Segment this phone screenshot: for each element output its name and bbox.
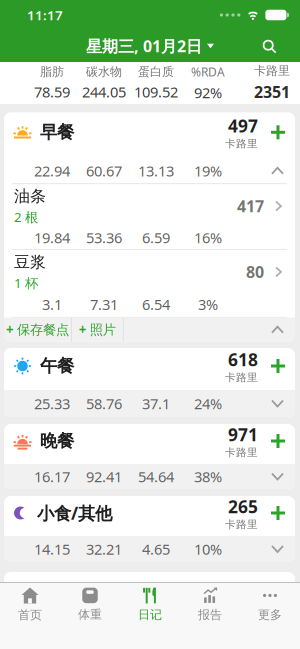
button[interactable]: 添加小食/其他食物 [267,502,289,524]
staticText: 19% [194,161,222,181]
staticText: 19.84 [34,228,70,247]
staticText: 14.15 [34,539,70,559]
staticText: 卡路里 [254,63,290,78]
button[interactable]: 收起 [264,164,295,178]
button[interactable]: + [72,318,123,342]
button[interactable]: 展开 [264,542,295,556]
button[interactable]: + [4,318,71,342]
staticText: 豆浆 [14,252,46,272]
staticText: 24% [194,394,222,413]
staticText: 53.36 [86,228,122,247]
staticText: 80 [246,261,264,282]
staticText: + [79,321,87,338]
staticText: 265 [228,495,258,518]
staticText: 60.67 [86,161,122,181]
staticText: 油条 [14,186,46,206]
button[interactable]: 豆浆 [4,250,295,292]
staticText: 109.52 [134,82,178,102]
staticText: 2 根 [14,208,38,226]
staticText: 6.59 [142,228,170,247]
staticText: 971 [228,423,258,446]
staticText: 脂肪 [40,64,64,79]
staticText: 报告 [198,607,222,622]
staticText: 3.1 [42,295,62,314]
button[interactable]: 油条 [4,184,295,226]
button[interactable]: 展开 [264,469,295,483]
staticText: 6.54 [142,295,170,314]
staticText: 4.65 [142,539,170,559]
button[interactable]: 更多 [240,583,300,627]
staticText: 22.94 [34,161,70,181]
staticText: 7.31 [90,295,118,314]
staticText: 25.33 [34,394,70,413]
staticText: 照片 [90,321,116,338]
staticText: 16.17 [34,467,70,486]
staticText: 37.1 [142,394,170,413]
button[interactable]: 日记 [120,583,180,627]
staticText: %RDA [191,64,225,80]
staticText: 54.64 [138,467,174,486]
staticText: 417 [237,195,264,217]
staticText: 32.21 [86,539,122,559]
button[interactable]: 选择日期 [86,29,214,63]
staticText: 58.76 [86,394,122,413]
staticText: 保存餐点 [17,321,69,338]
staticText: 蛋白质 [138,64,174,79]
staticText: 晚餐 [40,430,74,452]
button[interactable]: 展开 [264,396,295,410]
button[interactable]: 添加晚餐食物 [267,430,289,452]
staticText: 3% [198,295,218,314]
staticText: 日记 [138,607,162,622]
staticText: 92.41 [86,467,122,486]
button[interactable]: 报告 [180,583,240,627]
button[interactable]: 添加午餐食物 [267,355,289,377]
staticText: 244.05 [82,82,126,102]
staticText: 16% [194,228,222,247]
staticText: 星期三, 01月2日 [86,35,202,57]
staticText: 618 [228,348,258,371]
staticText: 更多 [258,607,282,622]
staticText: 卡路里 [225,371,258,384]
staticText: 1 杯 [14,274,38,292]
button[interactable]: 添加早餐食物 [267,121,289,143]
staticText: 卡路里 [225,137,258,150]
staticText: 11:17 [27,6,63,24]
staticText: 497 [228,114,258,137]
button[interactable]: 搜索 [254,31,284,61]
staticText: 午餐 [40,355,74,377]
staticText: 2351 [254,81,290,102]
staticText: 早餐 [40,122,74,143]
button[interactable]: 首页 [0,583,60,627]
staticText: 10% [194,539,222,559]
button[interactable]: 收起早餐 [264,323,295,337]
staticText: + [6,321,14,338]
staticText: 78.59 [34,82,70,102]
staticText: 卡路里 [225,518,258,531]
staticText: 小食/其他 [37,501,112,524]
staticText: 38% [194,467,222,486]
staticText: 首页 [18,607,42,622]
staticText: 体重 [78,607,102,622]
staticText: 碳水物 [86,64,122,79]
staticText: 13.13 [138,161,174,181]
button[interactable]: 体重 [60,583,120,627]
staticText: 92% [194,83,222,102]
staticText: 卡路里 [225,446,258,459]
